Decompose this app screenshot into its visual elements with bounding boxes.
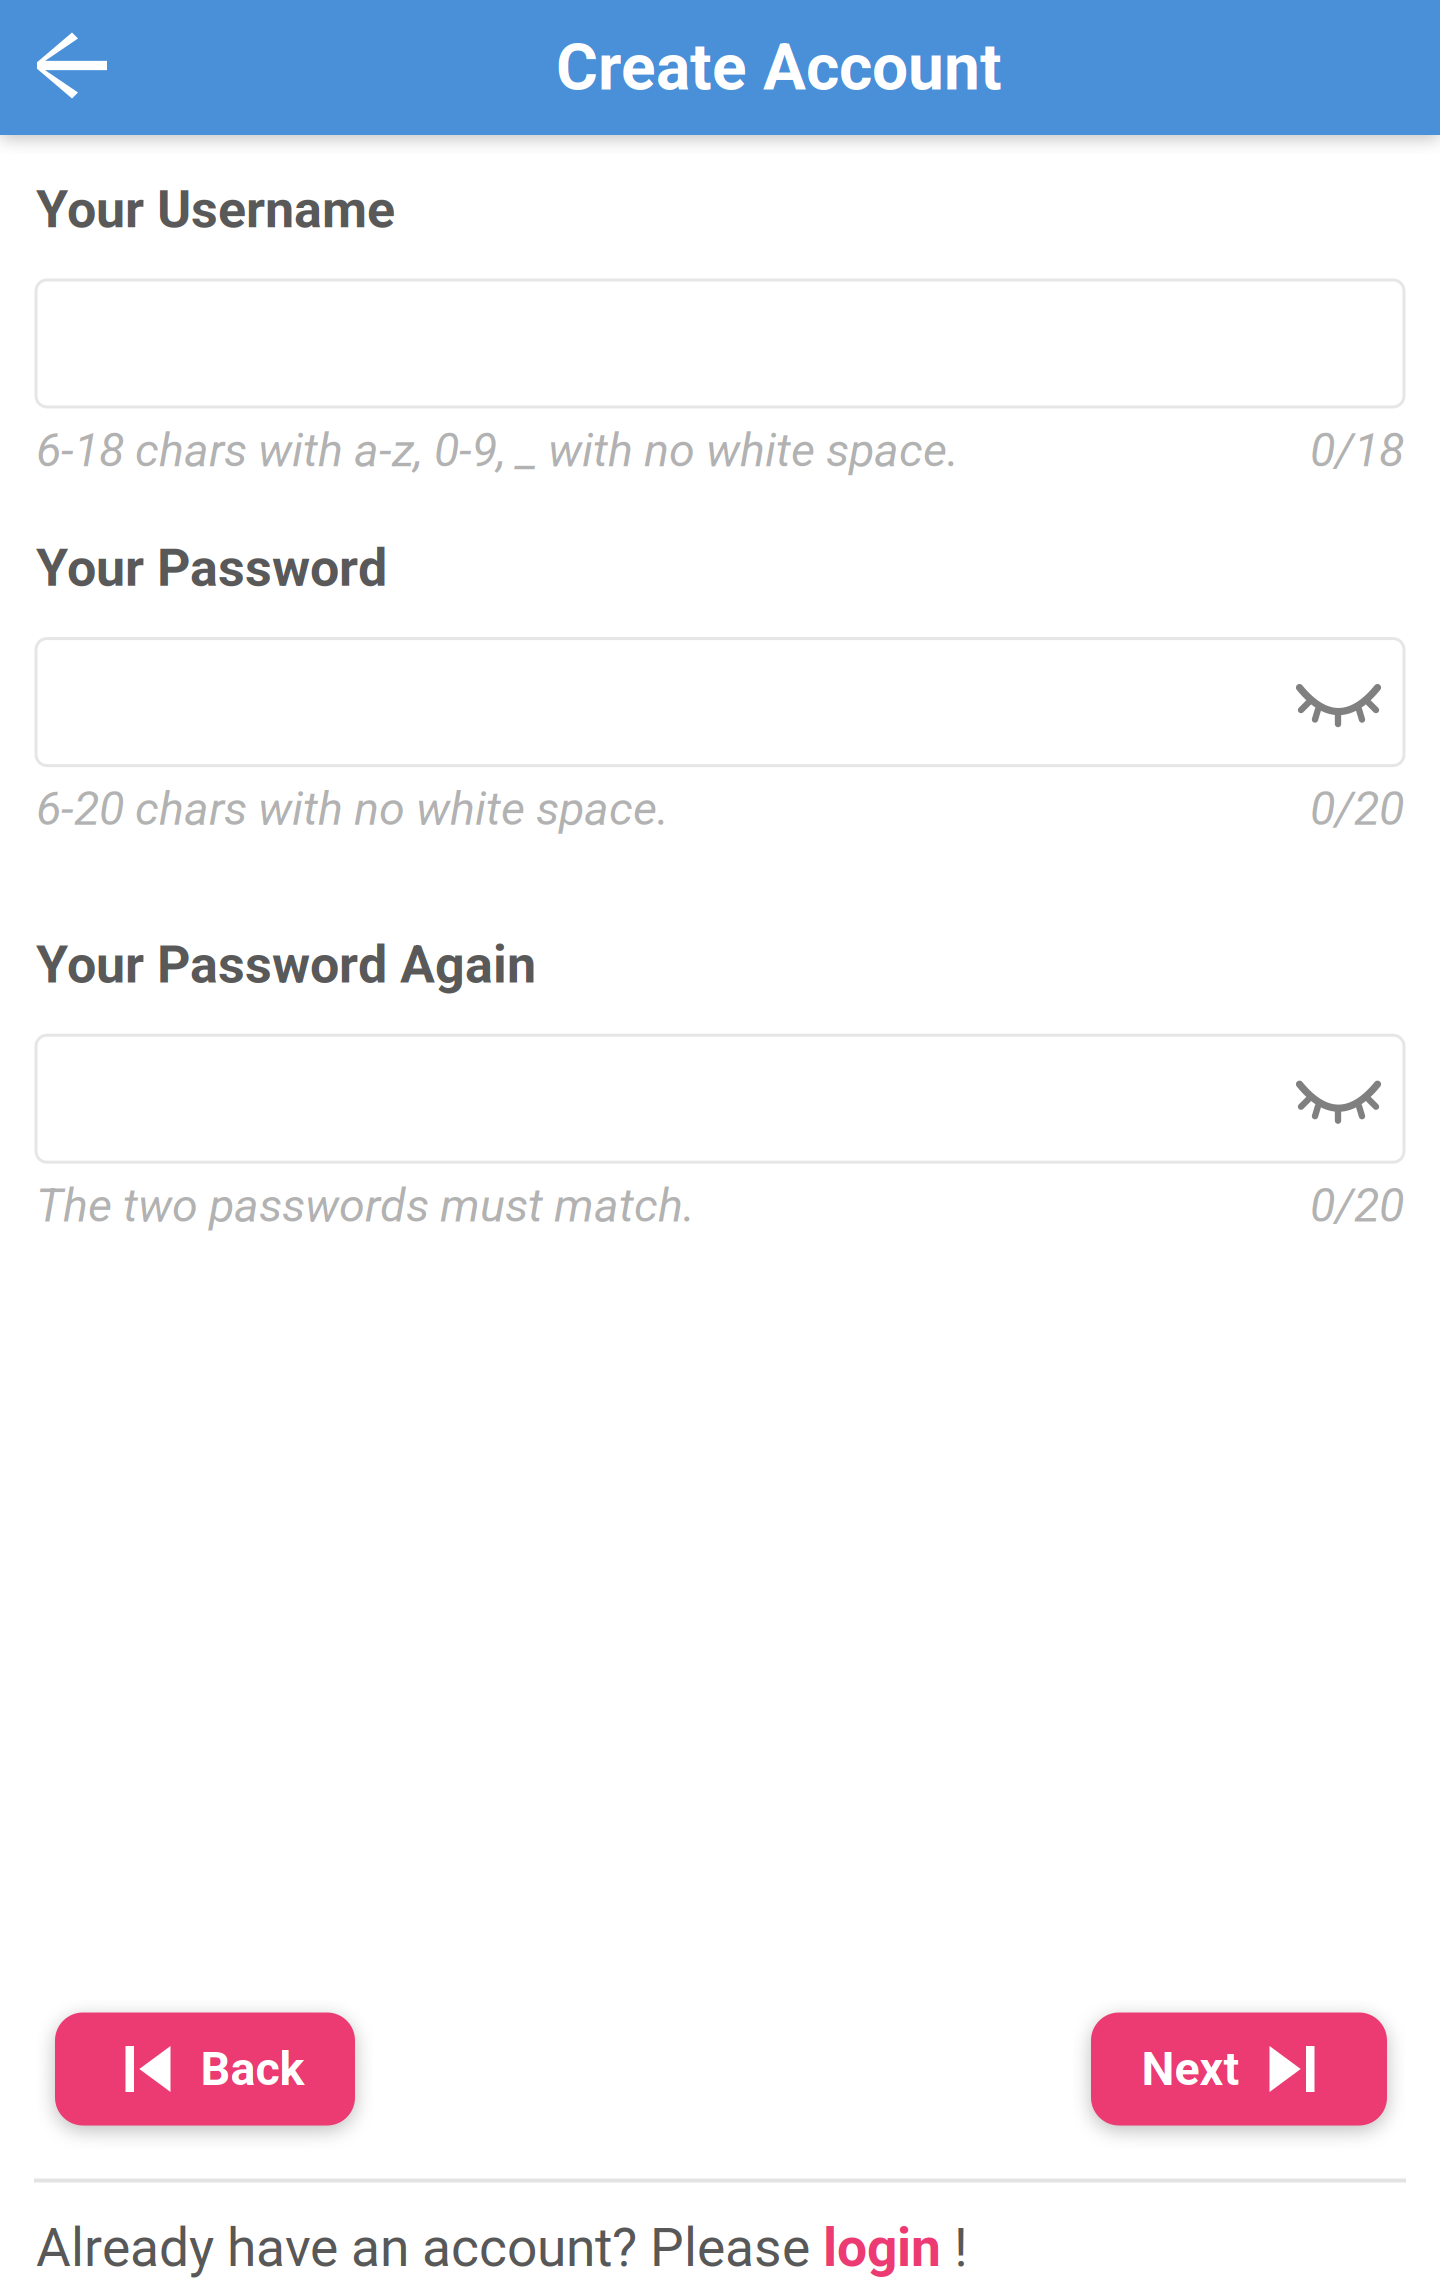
staticText: Already have an account? Please [36, 2216, 823, 2279]
staticText: 0/20 [1310, 1178, 1404, 1233]
button[interactable]: Back [55, 2012, 355, 2125]
staticText: The two passwords must match. [36, 1178, 695, 1233]
staticText: Your Password Again [36, 934, 536, 995]
button[interactable]: Back [0, 0, 136, 135]
button[interactable]: login [823, 2216, 941, 2279]
button[interactable]: Next [1091, 2012, 1387, 2125]
staticText: Your Username [36, 179, 395, 240]
button[interactable]: Show password [1296, 1072, 1404, 1125]
staticText: Back [200, 2042, 304, 2096]
button[interactable]: Show password [1296, 676, 1404, 729]
staticText: Your Password [36, 538, 387, 598]
staticText: 0/18 [1310, 423, 1404, 478]
staticText: 0/20 [1310, 782, 1404, 836]
staticText: 6-18 chars with a-z, 0-9, _ with no whit… [36, 423, 959, 478]
staticText: 6-20 chars with no white space. [36, 782, 669, 836]
staticText: Create Account [556, 30, 1002, 105]
button[interactable]: Your Username [36, 280, 1404, 407]
button[interactable]: Your Password [36, 639, 1404, 766]
staticText: ! [941, 2216, 968, 2279]
staticText: Next [1141, 2042, 1239, 2096]
button[interactable]: Your Password Again [36, 1035, 1404, 1162]
staticText: login [823, 2216, 941, 2279]
